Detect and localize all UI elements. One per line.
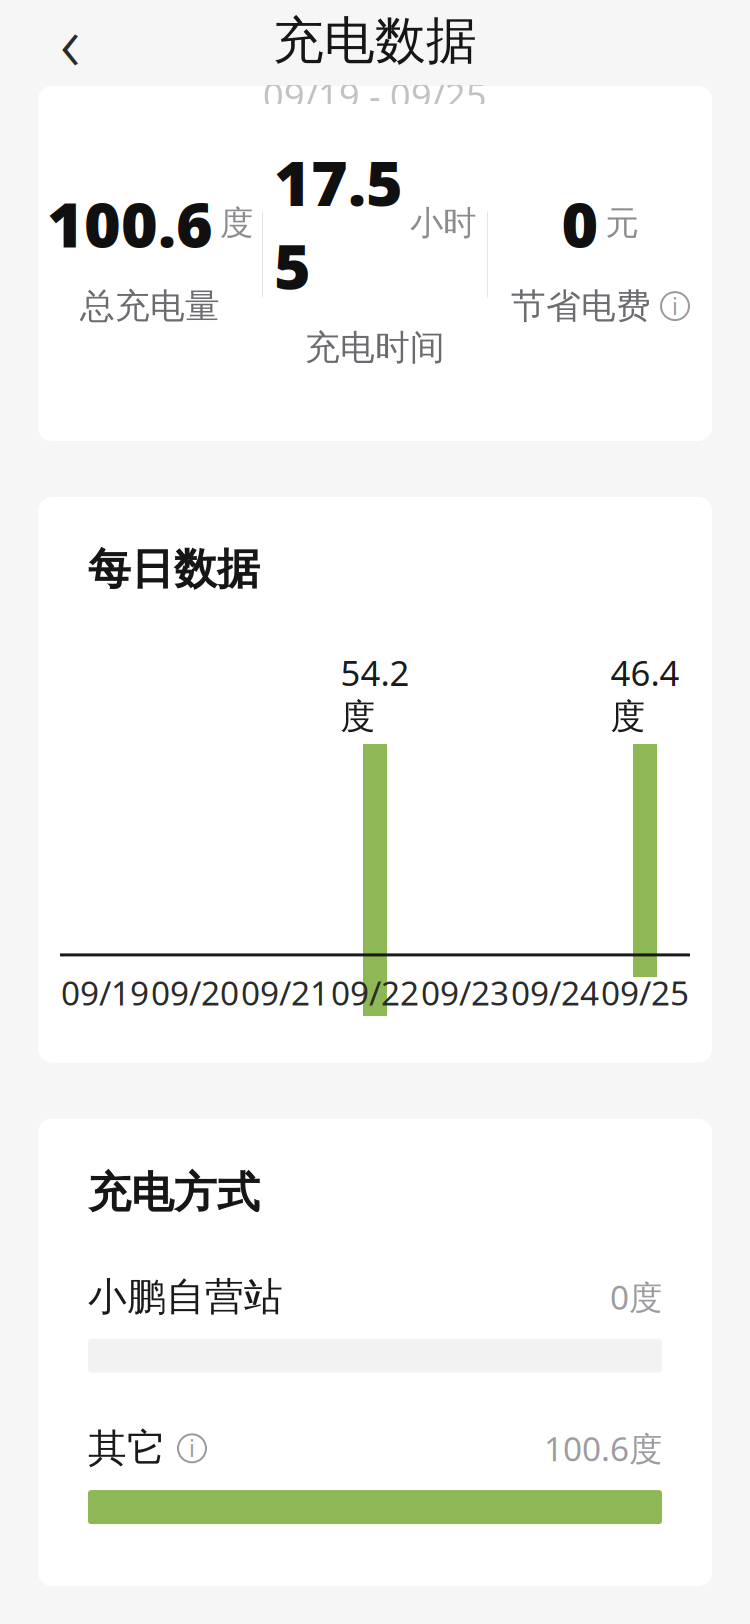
- staticText: 100.6度: [544, 1426, 662, 1470]
- staticText: 节省电费: [511, 285, 651, 327]
- staticText: i: [189, 1433, 195, 1463]
- staticText: 09/22: [331, 970, 419, 1015]
- staticText: 0度: [610, 1275, 662, 1319]
- staticText: 小鹏自营站: [88, 1273, 283, 1321]
- staticText: 元: [605, 203, 638, 244]
- staticText: 09/21: [241, 970, 329, 1015]
- staticText: 09/25: [601, 970, 689, 1015]
- staticText: 09/19: [61, 970, 149, 1015]
- staticText: 09/19 - 09/25: [263, 71, 487, 119]
- staticText: 100.6: [47, 182, 213, 265]
- staticText: 充电方式: [88, 1167, 260, 1219]
- button[interactable]: 其它说明: [178, 1434, 206, 1462]
- staticText: 54.2度: [340, 649, 409, 738]
- staticText: i: [672, 291, 678, 321]
- button[interactable]: Back: [28, 0, 112, 83]
- staticText: ‹: [60, 0, 80, 92]
- staticText: 小时: [410, 203, 476, 244]
- staticText: 09/20: [151, 970, 239, 1015]
- staticText: 0: [561, 182, 598, 265]
- staticText: 其它: [88, 1425, 166, 1472]
- staticText: 总充电量: [80, 285, 220, 327]
- staticText: 09/23: [421, 970, 509, 1015]
- staticText: 46.4度: [610, 649, 679, 738]
- staticText: 每日数据: [88, 543, 260, 595]
- staticText: 17.55: [274, 140, 403, 306]
- staticText: 充电时间: [305, 326, 445, 369]
- staticText: 度: [220, 203, 253, 244]
- staticText: 充电数据: [273, 10, 477, 72]
- staticText: 09/24: [511, 970, 599, 1015]
